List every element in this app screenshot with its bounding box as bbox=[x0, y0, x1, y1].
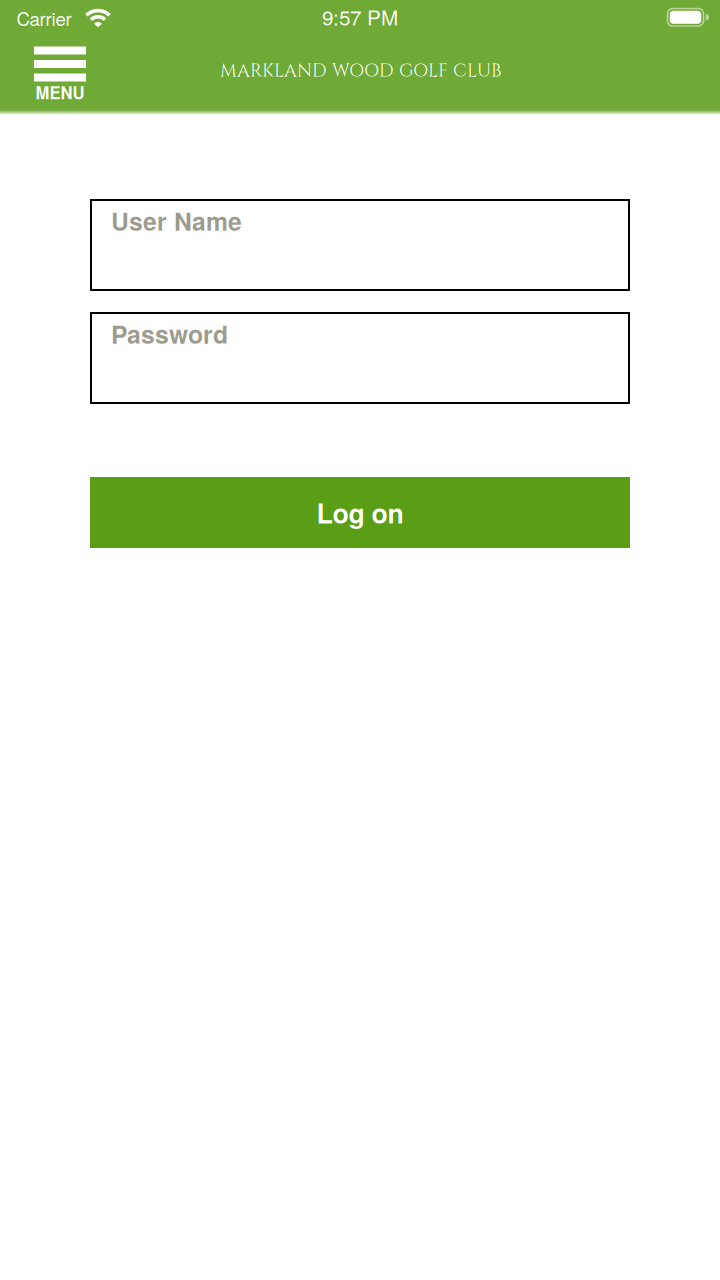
staticText: MARKLAND WOOD GOLF CLUB bbox=[220, 59, 502, 83]
textField[interactable]: User Name bbox=[111, 203, 630, 238]
button[interactable]: Menu bbox=[15, 0, 105, 112]
staticText: User Name bbox=[111, 203, 242, 238]
staticText: 9:57 PM bbox=[322, 2, 398, 31]
staticText: Password bbox=[111, 316, 228, 351]
staticText: Carrier bbox=[16, 5, 71, 31]
button[interactable]: Log on bbox=[90, 477, 630, 548]
secureTextField[interactable]: Password bbox=[111, 316, 630, 351]
staticText: MENU bbox=[35, 81, 84, 104]
staticText: Log on bbox=[316, 493, 403, 532]
